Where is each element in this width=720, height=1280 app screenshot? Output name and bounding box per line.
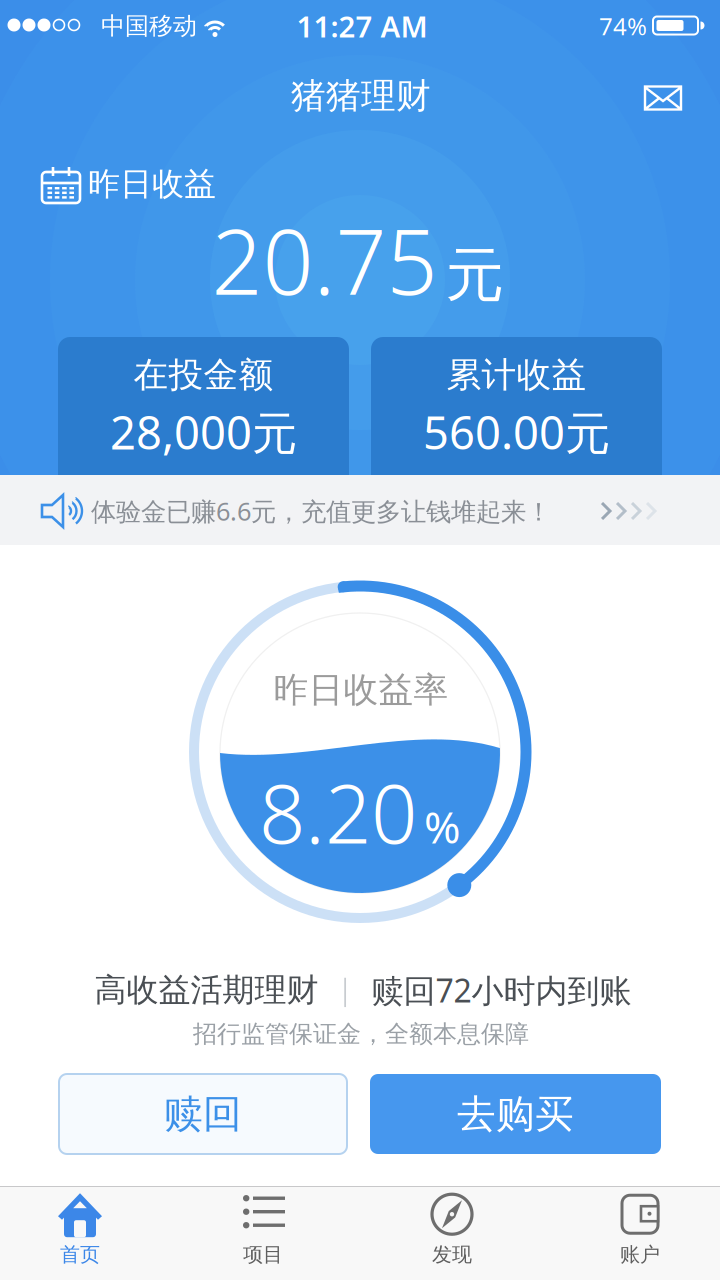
button[interactable]: 体验金已赚6.6元，充值更多让钱堆起来！ xyxy=(0,0,720,1280)
staticText: 累计收益 xyxy=(446,354,586,396)
staticText: 去购买 xyxy=(457,1090,574,1138)
staticText: 28,000元 xyxy=(110,402,297,462)
button[interactable]: 首页 xyxy=(5,1186,155,1272)
staticText: 74% xyxy=(599,10,647,42)
staticText: 体验金已赚6.6元，充值更多让钱堆起来！ xyxy=(91,494,551,528)
staticText: 560.00元 xyxy=(423,402,610,462)
staticText: 猪猪理财 xyxy=(291,75,431,117)
staticText: 首页 xyxy=(60,1242,100,1267)
staticText: 在投金额 xyxy=(133,354,273,396)
staticText: ｜ xyxy=(330,972,359,1008)
staticText: 赎回 xyxy=(164,1090,242,1138)
staticText: 8.20 xyxy=(259,758,417,866)
staticText: 高收益活期理财 xyxy=(94,970,318,1010)
staticText: 11:27 AM xyxy=(296,6,427,45)
button[interactable]: 账户 xyxy=(565,1186,715,1272)
staticText: 元 xyxy=(445,239,504,311)
button[interactable]: 赎回 xyxy=(59,1074,347,1154)
staticText: 中国移动 xyxy=(101,11,197,41)
button[interactable]: 去购买 xyxy=(370,1074,661,1154)
staticText: 招行监管保证金，全额本息保障 xyxy=(193,1019,529,1049)
staticText: 发现 xyxy=(432,1242,472,1267)
staticText: % xyxy=(424,797,461,856)
staticText: 昨日收益率 xyxy=(273,669,448,711)
staticText: 昨日收益 xyxy=(88,164,216,204)
staticText: 项目 xyxy=(243,1242,283,1267)
staticText: 账户 xyxy=(620,1242,660,1267)
button[interactable]: 发现 xyxy=(377,1186,527,1272)
button[interactable]: Messages xyxy=(641,80,685,116)
button[interactable]: 项目 xyxy=(188,1186,338,1272)
staticText: 赎回72小时内到账 xyxy=(371,969,631,1011)
staticText: 20.75 xyxy=(211,201,437,319)
